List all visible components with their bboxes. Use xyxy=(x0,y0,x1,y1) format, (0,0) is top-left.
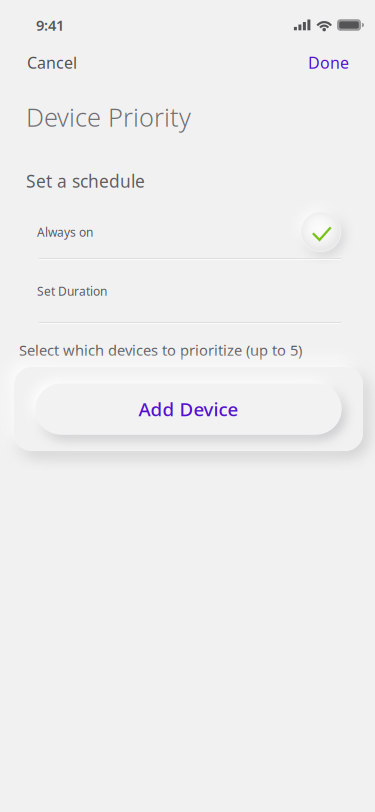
staticText: 9:41 xyxy=(36,15,64,35)
staticText: Set Duration xyxy=(37,283,107,299)
button[interactable]: Set Duration xyxy=(0,260,375,322)
staticText: Add Device xyxy=(138,397,238,421)
button[interactable]: Always on xyxy=(0,206,375,258)
staticText: Cancel xyxy=(27,52,77,73)
staticText: Device Priority xyxy=(26,100,191,134)
staticText: Set a schedule xyxy=(26,169,145,192)
button[interactable]: Cancel xyxy=(16,43,88,82)
staticText: Done xyxy=(308,52,349,73)
staticText: Always on xyxy=(37,224,93,240)
button[interactable]: Done xyxy=(297,43,360,82)
staticText: Select which devices to prioritize (up t… xyxy=(19,340,302,360)
button[interactable]: Add Device xyxy=(14,383,363,434)
